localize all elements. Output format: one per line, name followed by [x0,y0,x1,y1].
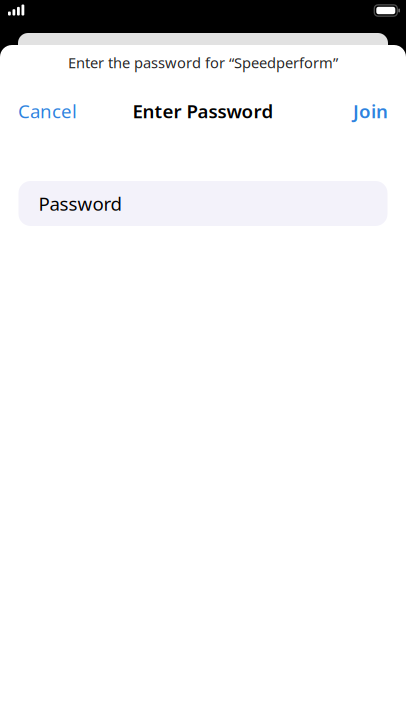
staticText: Enter the password for “Speedperform” [68,53,338,72]
button[interactable]: Cancel [18,99,77,123]
button[interactable]: Password [18,181,387,226]
staticText: Cancel [18,99,77,123]
staticText: Password [38,191,121,216]
staticText: Join [353,99,388,123]
staticText: Enter Password [132,99,273,123]
button[interactable]: Join [353,99,388,123]
